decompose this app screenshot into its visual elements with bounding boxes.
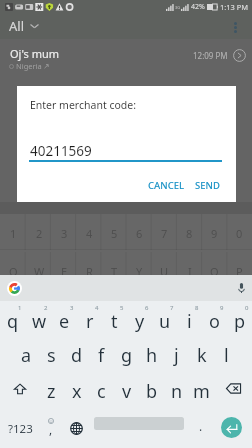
staticText: Nigeria bbox=[16, 61, 42, 71]
button[interactable]: Change keyboard language bbox=[62, 406, 90, 448]
button[interactable]: 8 bbox=[177, 301, 202, 336]
staticText: l bbox=[224, 343, 229, 368]
staticText: f bbox=[98, 343, 105, 368]
staticText: T bbox=[111, 264, 118, 279]
staticText: x bbox=[72, 379, 82, 404]
staticText: 40211569 bbox=[30, 142, 92, 160]
staticText: w bbox=[32, 309, 47, 334]
staticText: 9 bbox=[211, 226, 218, 241]
staticText: o bbox=[209, 309, 220, 334]
staticText: p bbox=[234, 309, 246, 334]
button[interactable]: 4 bbox=[77, 301, 102, 336]
staticText: 9 bbox=[220, 304, 224, 312]
staticText: n bbox=[171, 379, 183, 404]
staticText: r bbox=[86, 309, 94, 334]
button[interactable]: 9 bbox=[202, 301, 227, 336]
staticText: u bbox=[159, 309, 171, 334]
staticText: W bbox=[34, 264, 45, 279]
staticText: 5 bbox=[111, 226, 118, 241]
button[interactable]: Shift bbox=[0, 371, 39, 406]
staticText: v bbox=[122, 379, 132, 404]
staticText: CANCEL bbox=[148, 179, 185, 192]
staticText: 0 bbox=[236, 226, 243, 241]
staticText: 1 bbox=[10, 226, 17, 241]
button[interactable]: ?123 bbox=[0, 406, 40, 448]
staticText: 1 bbox=[18, 304, 22, 312]
staticText: 8 bbox=[195, 304, 199, 312]
staticText: All bbox=[9, 17, 25, 35]
button[interactable]: v bbox=[114, 371, 139, 406]
staticText: Q bbox=[9, 264, 18, 279]
staticText: a bbox=[21, 343, 32, 368]
staticText: e bbox=[59, 309, 70, 334]
staticText: k bbox=[197, 343, 207, 368]
staticText: . bbox=[199, 418, 203, 434]
staticText: E bbox=[61, 264, 68, 279]
staticText: y bbox=[135, 309, 145, 334]
staticText: t bbox=[111, 309, 118, 334]
staticText: I bbox=[188, 264, 192, 279]
staticText: g bbox=[121, 343, 133, 368]
button[interactable]: n bbox=[164, 371, 189, 406]
staticText: 8 bbox=[186, 226, 193, 241]
button[interactable]: Period bbox=[188, 406, 214, 448]
button[interactable]: All bbox=[0, 13, 47, 39]
staticText: 3G bbox=[175, 5, 181, 10]
button[interactable]: Google bbox=[7, 281, 22, 296]
button[interactable]: d bbox=[64, 336, 89, 371]
button[interactable]: f bbox=[89, 336, 114, 371]
staticText: 5 bbox=[120, 304, 124, 312]
button[interactable]: 0 bbox=[227, 301, 252, 336]
button[interactable]: Backspace bbox=[214, 371, 252, 406]
button[interactable]: a bbox=[14, 336, 39, 371]
button[interactable]: 7 bbox=[152, 301, 177, 336]
button[interactable]: c bbox=[89, 371, 114, 406]
staticText: O bbox=[210, 264, 219, 279]
button[interactable]: s bbox=[39, 336, 64, 371]
staticText: SEND bbox=[195, 179, 220, 192]
button[interactable]: 2 bbox=[26, 301, 52, 336]
staticText: 4 bbox=[95, 304, 99, 312]
staticText: 6 bbox=[145, 304, 149, 312]
button[interactable]: h bbox=[139, 336, 164, 371]
staticText: i bbox=[187, 309, 192, 334]
button[interactable]: x bbox=[64, 371, 89, 406]
staticText: q bbox=[7, 309, 19, 334]
button[interactable]: 5 bbox=[102, 301, 127, 336]
button[interactable]: Oj's mum bbox=[0, 39, 252, 71]
staticText: j bbox=[174, 343, 179, 368]
staticText: 7 bbox=[170, 304, 174, 312]
staticText: s bbox=[47, 343, 56, 368]
button[interactable]: SEND bbox=[190, 174, 225, 196]
staticText: 3 bbox=[70, 304, 74, 312]
staticText: 0 bbox=[245, 304, 249, 312]
staticText: c bbox=[97, 379, 106, 404]
button[interactable]: CANCEL bbox=[143, 174, 190, 196]
button[interactable]: 3 bbox=[52, 301, 77, 336]
button[interactable]: Enter bbox=[221, 417, 242, 438]
button[interactable]: Comma and emoji bbox=[40, 406, 62, 448]
staticText: Enter merchant code: bbox=[30, 98, 136, 112]
staticText: 1:13 PM bbox=[220, 2, 249, 12]
button[interactable]: g bbox=[114, 336, 139, 371]
staticText: 12:09 PM bbox=[193, 50, 228, 61]
button[interactable]: j bbox=[164, 336, 189, 371]
button[interactable]: z bbox=[39, 371, 64, 406]
button[interactable]: k bbox=[189, 336, 214, 371]
button[interactable]: m bbox=[189, 371, 214, 406]
button[interactable]: b bbox=[139, 371, 164, 406]
button[interactable]: 6 bbox=[127, 301, 152, 336]
staticText: h bbox=[146, 343, 158, 368]
staticText: , bbox=[49, 421, 53, 437]
staticText: 3 bbox=[61, 226, 68, 241]
staticText: d bbox=[71, 343, 83, 368]
staticText: z bbox=[47, 379, 56, 404]
button[interactable]: 1 bbox=[0, 301, 26, 336]
staticText: 7 bbox=[161, 226, 168, 241]
staticText: P bbox=[236, 264, 243, 279]
button[interactable]: Voice input bbox=[234, 281, 248, 295]
button[interactable]: More options bbox=[223, 15, 247, 39]
button[interactable]: l bbox=[214, 336, 239, 371]
staticText: U bbox=[160, 264, 169, 279]
